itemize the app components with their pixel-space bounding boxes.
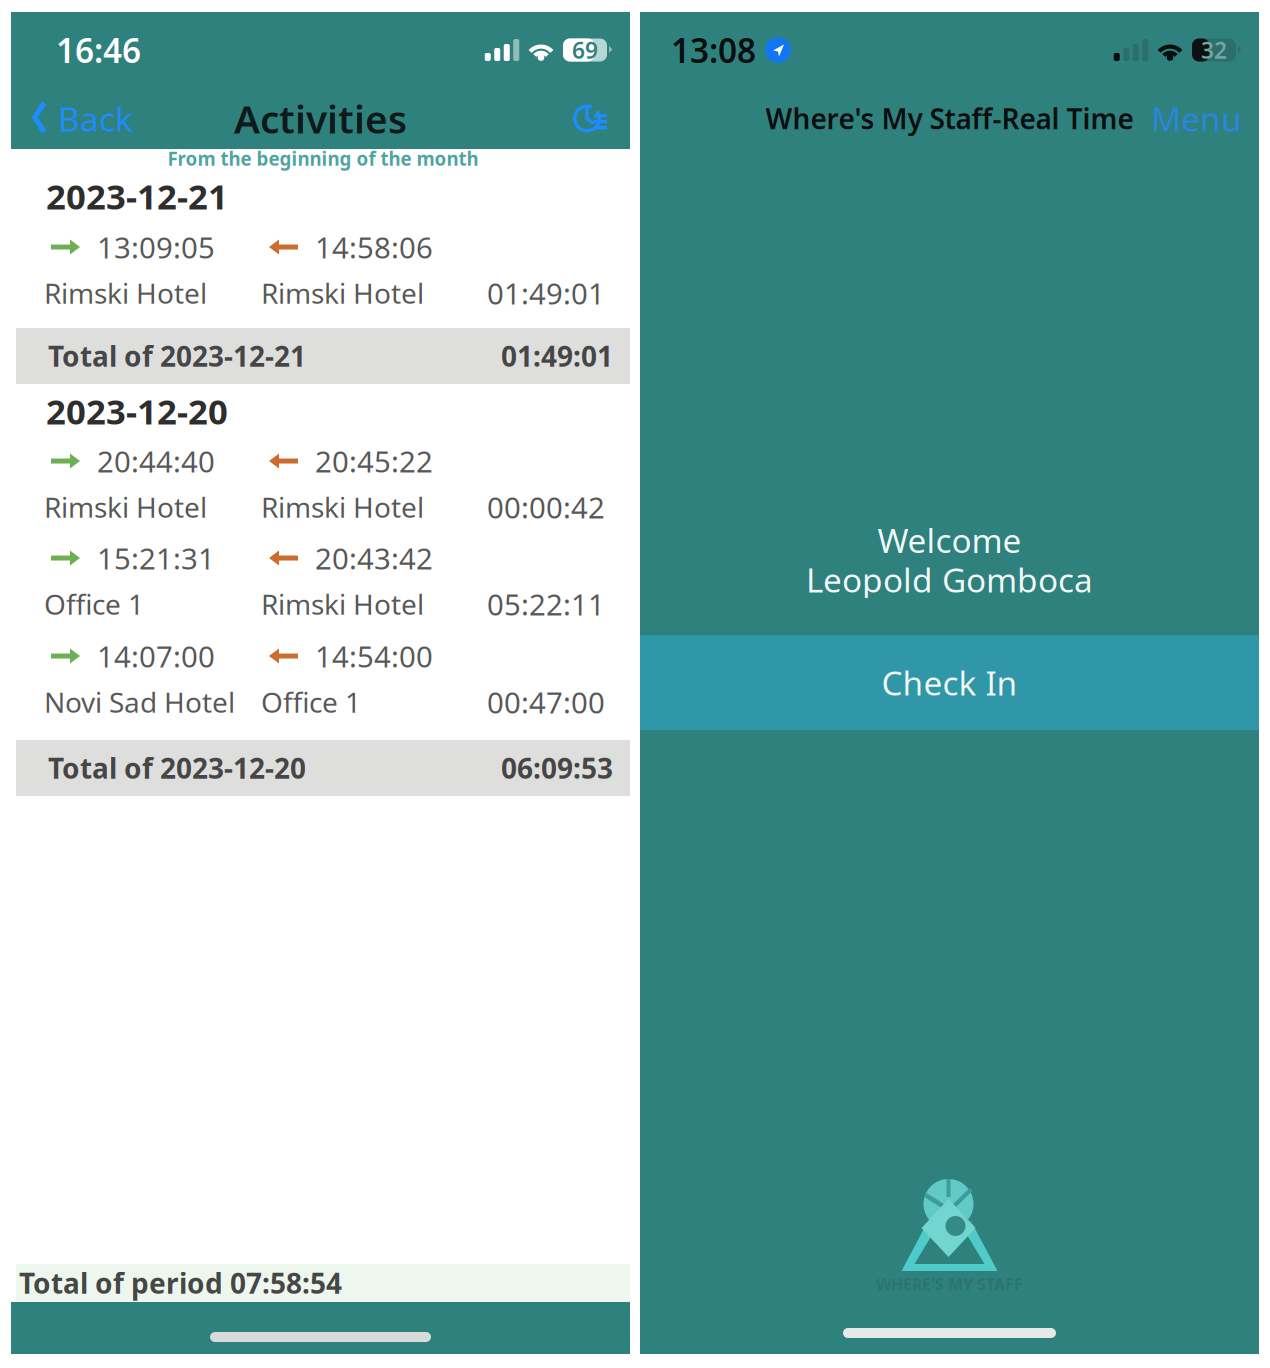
button[interactable]: Back xyxy=(11,88,133,149)
staticText: Rimski Hotel xyxy=(44,274,207,312)
staticText: Total of 2023-12-21 xyxy=(48,337,306,375)
staticText: Total of period 07:58:54 xyxy=(19,1264,342,1302)
staticText: Novi Sad Hotel xyxy=(44,683,235,721)
staticText: 00:00:42 xyxy=(487,487,605,526)
staticText: 06:09:53 xyxy=(501,749,613,787)
staticText: WHERE'S MY STAFF xyxy=(876,1273,1023,1295)
staticText: Office 1 xyxy=(44,585,144,623)
staticText: Where's My Staff-Real Time xyxy=(765,100,1133,137)
staticText: 05:22:11 xyxy=(487,584,605,623)
staticText: 14:58:06 xyxy=(315,227,433,266)
staticText: 13:09:05 xyxy=(97,227,215,266)
staticText: 20:45:22 xyxy=(315,441,433,480)
staticText: 15:21:31 xyxy=(97,538,215,577)
staticText: 69 xyxy=(572,35,598,65)
staticText: 20:44:40 xyxy=(97,441,215,480)
staticText: 01:49:01 xyxy=(501,337,613,375)
staticText: Welcome xyxy=(877,518,1021,562)
staticText: Activities xyxy=(234,93,407,144)
staticText: 14:54:00 xyxy=(315,636,433,675)
staticText: 2023-12-20 xyxy=(46,388,228,434)
staticText: Rimski Hotel xyxy=(44,488,207,526)
staticText: Office 1 xyxy=(261,683,361,721)
staticText: 14:07:00 xyxy=(97,636,215,675)
button[interactable]: Timesheet report xyxy=(572,88,630,149)
staticText: 13:08 xyxy=(671,28,756,72)
staticText: Menu xyxy=(1151,96,1242,141)
staticText: Total of 2023-12-20 xyxy=(48,749,306,787)
staticText: Leopold Gomboca xyxy=(806,557,1093,602)
staticText: 00:47:00 xyxy=(487,682,605,721)
staticText: Check In xyxy=(881,660,1017,705)
button[interactable]: Check In xyxy=(640,635,1259,730)
staticText: 16:46 xyxy=(56,28,141,72)
staticText: 01:49:01 xyxy=(487,273,605,312)
staticText: Rimski Hotel xyxy=(261,274,424,312)
staticText: Rimski Hotel xyxy=(261,488,424,526)
staticText: Back xyxy=(58,96,133,141)
staticText: 20:43:42 xyxy=(315,538,433,577)
staticText: 2023-12-21 xyxy=(46,173,228,219)
button[interactable]: Menu xyxy=(1151,88,1259,148)
staticText: From the beginning of the month xyxy=(167,146,478,171)
staticText: Rimski Hotel xyxy=(261,585,424,623)
staticText: 32 xyxy=(1201,35,1227,65)
